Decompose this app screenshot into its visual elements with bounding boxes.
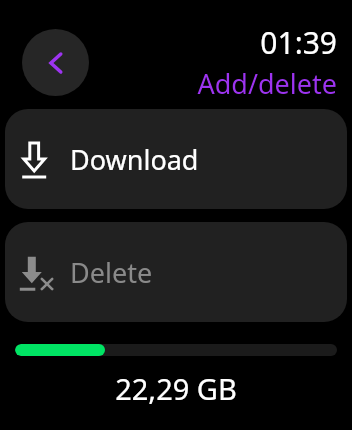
button[interactable]: Back: [22, 29, 89, 96]
staticText: Download: [70, 141, 199, 178]
staticText: Add/delete: [197, 65, 337, 102]
staticText: 01:39: [260, 22, 337, 63]
staticText: 22,29 GB: [115, 369, 237, 408]
button[interactable]: Download: [5, 109, 347, 209]
button[interactable]: Delete: [5, 222, 347, 322]
staticText: Delete: [70, 254, 153, 291]
